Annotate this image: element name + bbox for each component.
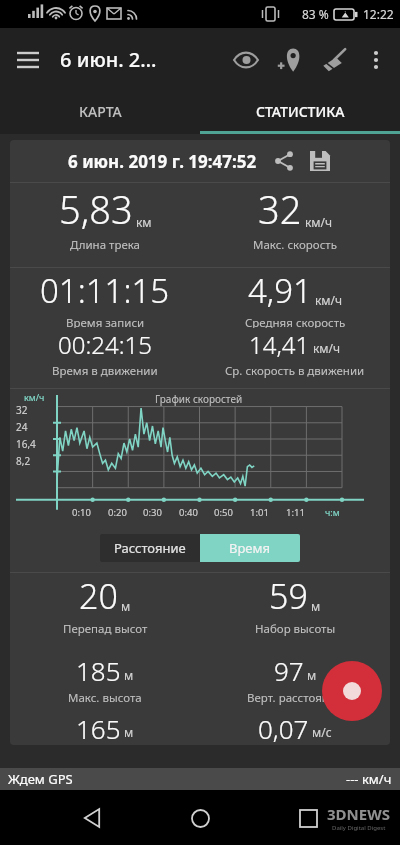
staticText: Верт. расстояние [247, 690, 343, 706]
staticText: Ср. скорость в движении [225, 363, 365, 379]
staticText: м [124, 667, 134, 683]
staticText: Расстояние [114, 539, 186, 557]
staticText: м [124, 724, 134, 740]
staticText: 24 [16, 420, 50, 434]
staticText: Время [229, 539, 271, 557]
staticText: Средняя скорость [245, 315, 346, 328]
button[interactable]: 97 [200, 653, 390, 706]
button[interactable]: 32 [200, 183, 390, 253]
button[interactable]: 20 [10, 573, 200, 637]
staticText: 83 % [302, 6, 329, 22]
button[interactable]: Start recording [322, 661, 382, 721]
staticText: км/ч [24, 391, 45, 403]
staticText: 00:24:15 [58, 328, 152, 361]
button[interactable]: Clear [312, 38, 356, 82]
staticText: 0:50 [214, 506, 233, 519]
button[interactable]: 185 [10, 653, 200, 706]
staticText: Время в движении [52, 363, 158, 379]
staticText: км/ч [305, 214, 333, 230]
staticText: 97 [274, 653, 304, 688]
staticText: 0,07 [258, 711, 309, 745]
staticText: 20 [79, 573, 118, 619]
staticText: Время записи [66, 315, 145, 328]
staticText: Ждем GPS [8, 770, 73, 788]
button[interactable]: Add marker [268, 38, 312, 82]
staticText: 0:40 [179, 506, 198, 519]
staticText: --- км/ч [346, 770, 392, 788]
staticText: 6 июн. 2… [60, 46, 157, 73]
staticText: 32 [16, 403, 50, 417]
button[interactable]: 5,83 [10, 183, 200, 253]
button[interactable]: КАРТА [0, 91, 200, 131]
staticText: Набор высоты [255, 621, 336, 637]
staticText: 165 [76, 711, 121, 745]
staticText: 8,2 [16, 454, 50, 468]
staticText: 0:10 [72, 506, 91, 519]
staticText: 4,91 [248, 268, 312, 313]
button[interactable]: Visibility [224, 38, 268, 82]
staticText: м [311, 598, 321, 614]
staticText: ч:м [325, 506, 340, 518]
staticText: Перепад высот [63, 621, 148, 637]
staticText: 59 [269, 573, 308, 619]
button[interactable]: 00:24:15 [10, 328, 200, 379]
button[interactable]: Save [307, 148, 333, 174]
staticText: Макс. скорость [253, 237, 337, 253]
staticText: 5,83 [59, 183, 133, 235]
button[interactable]: 4,91 [200, 268, 390, 328]
staticText: 12:22 [363, 6, 394, 22]
staticText: СТАТИСТИКА [256, 102, 345, 121]
button[interactable]: 01:11:15 [10, 268, 200, 328]
button[interactable]: Menu [0, 32, 56, 88]
staticText: м [307, 667, 317, 683]
staticText: 185 [76, 653, 121, 688]
staticText: км [136, 214, 152, 230]
staticText: Длина трека [70, 237, 141, 253]
button[interactable]: СТАТИСТИКА [200, 91, 400, 131]
staticText: 16,4 [16, 437, 50, 451]
staticText: 32 [258, 183, 302, 235]
staticText: Макс. высота [68, 690, 142, 706]
button[interactable]: 0,07 [200, 711, 390, 745]
button[interactable]: 59 [200, 573, 390, 637]
staticText: 3DNEWS [327, 804, 390, 824]
staticText: 1:11 [286, 506, 305, 519]
staticText: КАРТА [79, 102, 122, 121]
staticText: 14,41 [249, 328, 310, 361]
button[interactable]: Back [70, 796, 114, 840]
button[interactable]: 14,41 [200, 328, 390, 379]
staticText: 0:20 [108, 506, 127, 519]
staticText: 1:01 [250, 506, 269, 519]
button[interactable]: Время [200, 534, 300, 562]
button[interactable]: Расстояние [100, 534, 200, 562]
staticText: м [121, 598, 131, 614]
staticText: 01:11:15 [40, 268, 170, 313]
staticText: км/ч [313, 340, 341, 356]
button[interactable]: Share [271, 148, 297, 174]
staticText: 0:30 [143, 506, 162, 519]
staticText: км/ч [315, 292, 343, 308]
staticText: Daily Digital Digest [332, 824, 386, 832]
staticText: 6 июн. 2019 г. 19:47:52 [68, 150, 257, 173]
button[interactable]: More options [356, 40, 396, 80]
staticText: м/с [312, 724, 332, 740]
button[interactable]: Home [178, 796, 222, 840]
button[interactable]: 165 [10, 711, 200, 745]
button[interactable]: 6 июн. 2019 г. 19:47:52 [10, 140, 390, 182]
button[interactable]: Recents [286, 796, 330, 840]
staticText: График скоростей [155, 392, 243, 406]
